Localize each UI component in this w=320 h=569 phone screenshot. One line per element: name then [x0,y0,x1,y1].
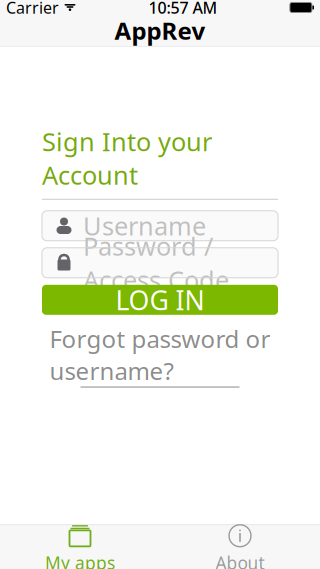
staticText: Sign Into your Account [42,124,212,192]
button[interactable]: Username [42,211,278,241]
button[interactable]: Forgot password or username? [42,323,278,387]
staticText: Forgot password or username? [49,323,270,386]
staticText: About [215,551,264,569]
button[interactable]: Password / Access Code [42,248,278,278]
button[interactable]: My apps [0,528,160,569]
staticText: AppRev [114,15,205,46]
staticText: 10:57 AM [148,0,217,18]
staticText: Password / Access Code [83,229,229,296]
button[interactable]: LOG IN [42,285,278,315]
staticText: My apps [45,551,115,569]
button[interactable]: About [160,528,320,569]
staticText: LOG IN [115,282,204,317]
staticText: Username [83,209,206,243]
staticText: Carrier [6,0,59,18]
